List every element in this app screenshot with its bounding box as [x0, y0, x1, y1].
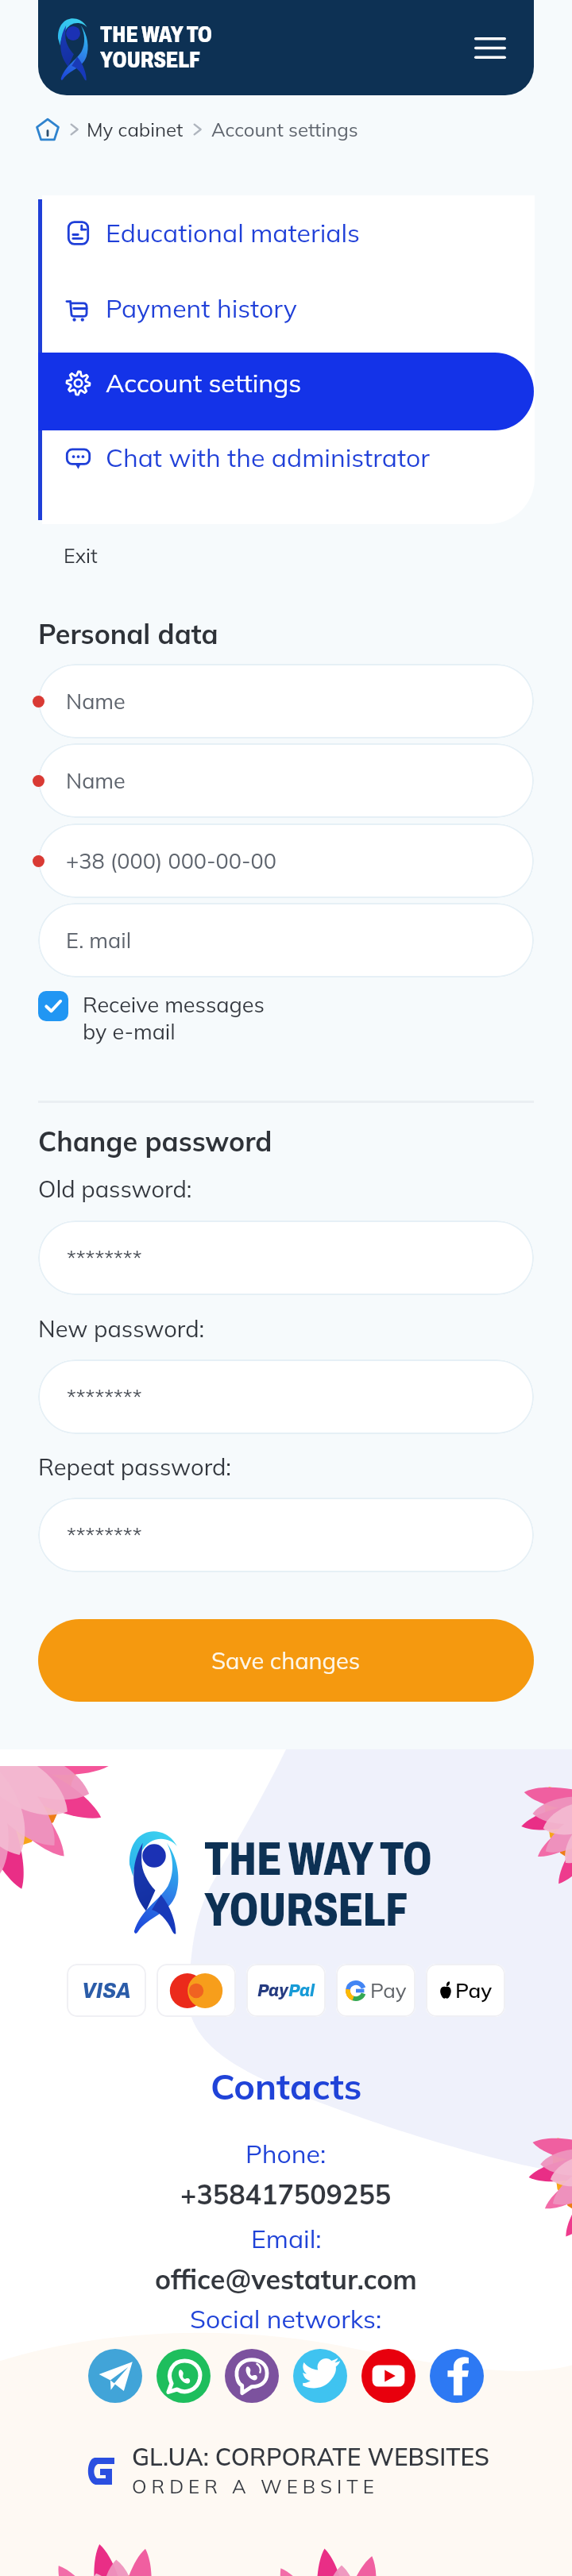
button[interactable]: Name [38, 664, 534, 738]
staticText: Social networks: [190, 2303, 382, 2335]
staticText: Repeat password: [38, 1452, 231, 1481]
button[interactable]: Exit [64, 543, 98, 568]
staticText: ******** [67, 1245, 142, 1271]
staticText: THE WAY TO [100, 22, 212, 48]
staticText: ORDER A WEBSITE [132, 2474, 379, 2498]
staticText: Contacts [211, 2064, 362, 2108]
button[interactable]: My cabinet [87, 118, 184, 141]
button[interactable]: Twitter [293, 2349, 347, 2403]
staticText: +358417509255 [180, 2177, 392, 2212]
button[interactable]: Open menu [467, 25, 513, 71]
button[interactable]: Home [32, 114, 64, 145]
button[interactable]: MC [157, 1964, 236, 2017]
staticText: E. mail [66, 927, 132, 954]
staticText: Account settings [211, 118, 358, 141]
button[interactable]: APay [426, 1964, 505, 2017]
staticText: ******** [67, 1522, 142, 1548]
staticText: New password: [38, 1314, 205, 1343]
button[interactable]: VISA [67, 1964, 146, 2017]
staticText: by e-mail [83, 1018, 176, 1045]
button[interactable]: +38 (000) 000-00-00 [38, 823, 534, 898]
staticText: Chat with the administrator [106, 442, 430, 473]
button[interactable]: Educational materials [38, 195, 534, 270]
staticText: +38 (000) 000-00-00 [66, 847, 276, 874]
button[interactable]: ******** [38, 1221, 534, 1295]
staticText: ******** [67, 1384, 142, 1410]
staticText: Educational materials [106, 217, 360, 249]
staticText: YOURSELF [204, 1884, 408, 1935]
button[interactable]: GL.UA: CORPORATE WEBSITES [83, 2442, 490, 2498]
staticText: Exit [64, 543, 98, 568]
staticText: Pay [455, 1977, 493, 2003]
staticText: Pal [288, 1981, 315, 2000]
button[interactable]: Name [38, 743, 534, 818]
staticText: Receive messages [83, 991, 265, 1018]
staticText: office@vestatur.com [155, 2262, 417, 2296]
button[interactable]: Save changes [38, 1619, 534, 1702]
button[interactable]: PayPal [246, 1964, 326, 2017]
staticText: Account settings [106, 367, 302, 399]
button[interactable]: ******** [38, 1359, 534, 1434]
button[interactable]: WhatsApp [157, 2349, 211, 2403]
staticText: YOURSELF [100, 48, 200, 73]
button[interactable]: Chat with the administrator [38, 420, 534, 495]
staticText: Personal data [38, 617, 218, 651]
button[interactable]: GPay [336, 1964, 415, 2017]
button[interactable]: E. mail [38, 903, 534, 978]
staticText: GL.UA: CORPORATE WEBSITES [132, 2442, 490, 2472]
staticText: Name [66, 688, 126, 715]
staticText: Email: [251, 2223, 322, 2254]
staticText: Pay [257, 1981, 288, 2000]
staticText: Name [66, 767, 126, 794]
staticText: Pay [370, 1977, 407, 2003]
staticText: Change password [38, 1124, 272, 1159]
staticText: Phone: [245, 2138, 327, 2169]
button[interactable]: Account settings [38, 345, 534, 420]
button[interactable]: Receive messages by e-mail [38, 991, 265, 1045]
button[interactable]: Telegram [88, 2349, 142, 2403]
staticText: Save changes [211, 1646, 361, 1675]
staticText: Payment history [106, 292, 297, 324]
staticText: Old password: [38, 1174, 192, 1203]
button[interactable]: ******** [38, 1498, 534, 1572]
button[interactable]: Facebook [430, 2349, 484, 2403]
button[interactable]: YouTube [361, 2349, 415, 2403]
staticText: VISA [82, 1979, 131, 2002]
button[interactable]: Payment history [38, 271, 534, 345]
staticText: THE WAY TO [204, 1834, 432, 1884]
button[interactable]: Viber [225, 2349, 279, 2403]
